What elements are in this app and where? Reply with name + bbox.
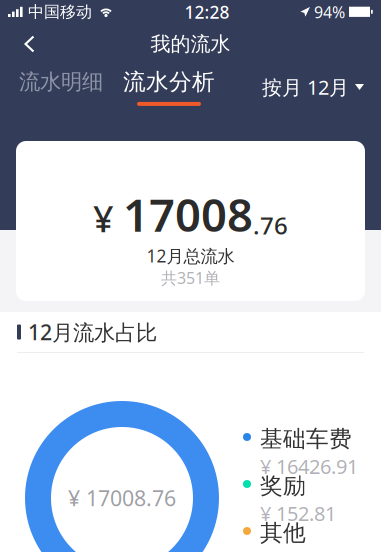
staticText: 17008 — [123, 184, 253, 244]
button[interactable]: 流水分析 — [113, 68, 225, 106]
staticText: 94% — [314, 1, 345, 23]
button[interactable]: 流水明细 — [9, 69, 113, 105]
staticText: ¥ 16426.91 — [260, 453, 358, 479]
staticText: 12月流水占比 — [28, 318, 157, 346]
staticText: 我的流水 — [150, 32, 230, 56]
staticText: 流水分析 — [123, 68, 215, 96]
staticText: 其他 — [260, 519, 306, 547]
staticText: ¥ 152.81 — [260, 500, 336, 526]
staticText: 共351单 — [161, 267, 220, 288]
staticText: ¥ 17008.76 — [68, 484, 176, 512]
staticText: 按月 12月 — [262, 74, 349, 100]
staticText: 奖励 — [260, 472, 306, 500]
staticText: 流水明细 — [19, 69, 103, 95]
button[interactable]: Back — [0, 24, 49, 64]
staticText: 中国移动 — [28, 2, 92, 22]
staticText: .76 — [253, 209, 288, 241]
staticText: 基础车费 — [260, 425, 352, 453]
staticText: ¥ — [93, 194, 114, 242]
button[interactable]: 按月 12月 — [254, 70, 372, 104]
staticText: 12:28 — [184, 0, 229, 23]
staticText: 12月总流水 — [146, 244, 234, 267]
